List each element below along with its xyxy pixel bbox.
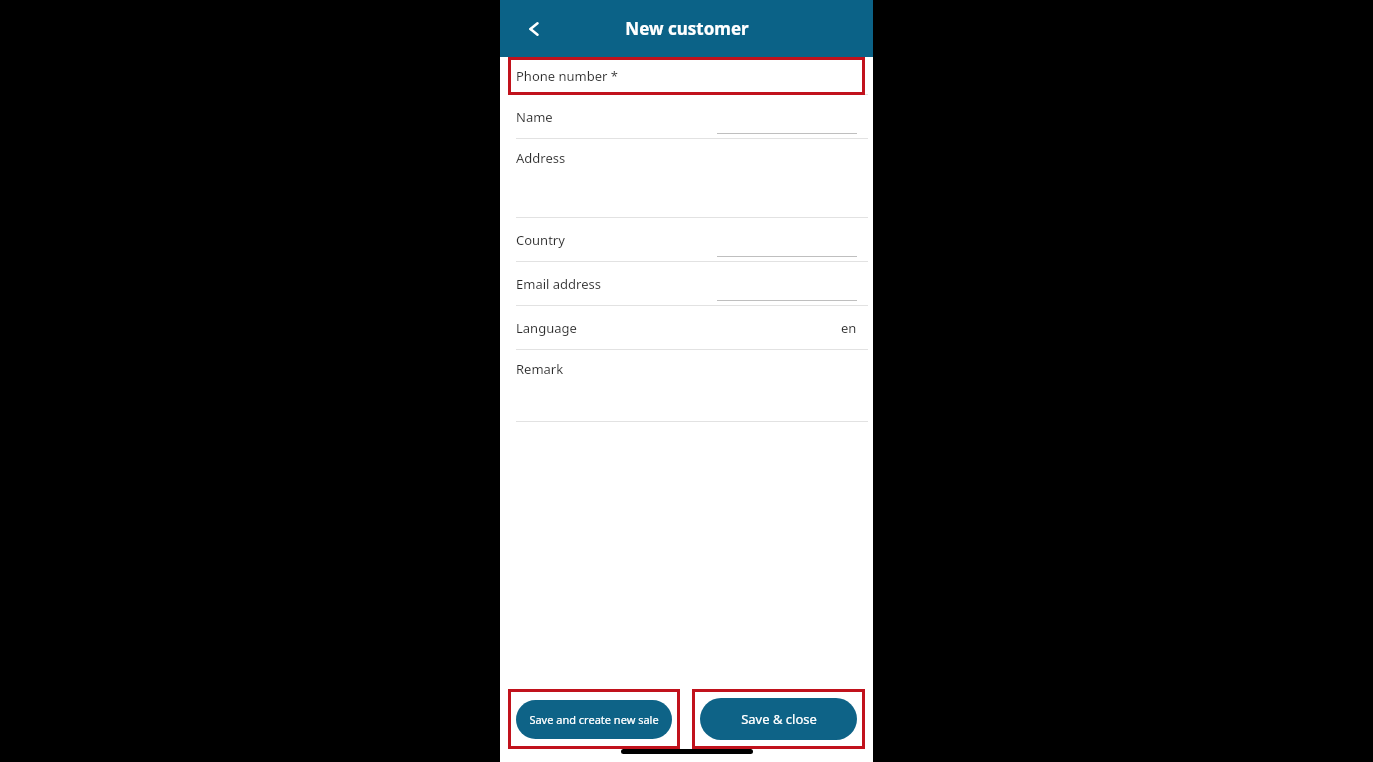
button[interactable]: Back [512,7,556,51]
button[interactable]: Address [500,139,873,218]
staticText: Language [516,319,577,337]
staticText: en [841,319,857,337]
staticText: Save & close [741,710,817,728]
staticText: Name [516,108,553,126]
staticText: Phone number * [516,67,618,85]
staticText: Save and create new sale [529,712,659,727]
button[interactable]: Remark [500,350,873,422]
staticText: Remark [516,360,564,378]
button[interactable]: Country [500,218,873,262]
staticText: Email address [516,275,601,293]
button[interactable]: Phone number * [500,57,873,95]
button[interactable]: Language [500,306,873,350]
button[interactable]: Name [500,95,873,139]
button[interactable]: Email address [500,262,873,306]
button[interactable]: Save & close [700,698,857,740]
staticText: Country [516,231,565,249]
staticText: Address [516,149,566,167]
button[interactable]: Save and create new sale [516,700,672,739]
staticText: New customer [625,17,749,40]
